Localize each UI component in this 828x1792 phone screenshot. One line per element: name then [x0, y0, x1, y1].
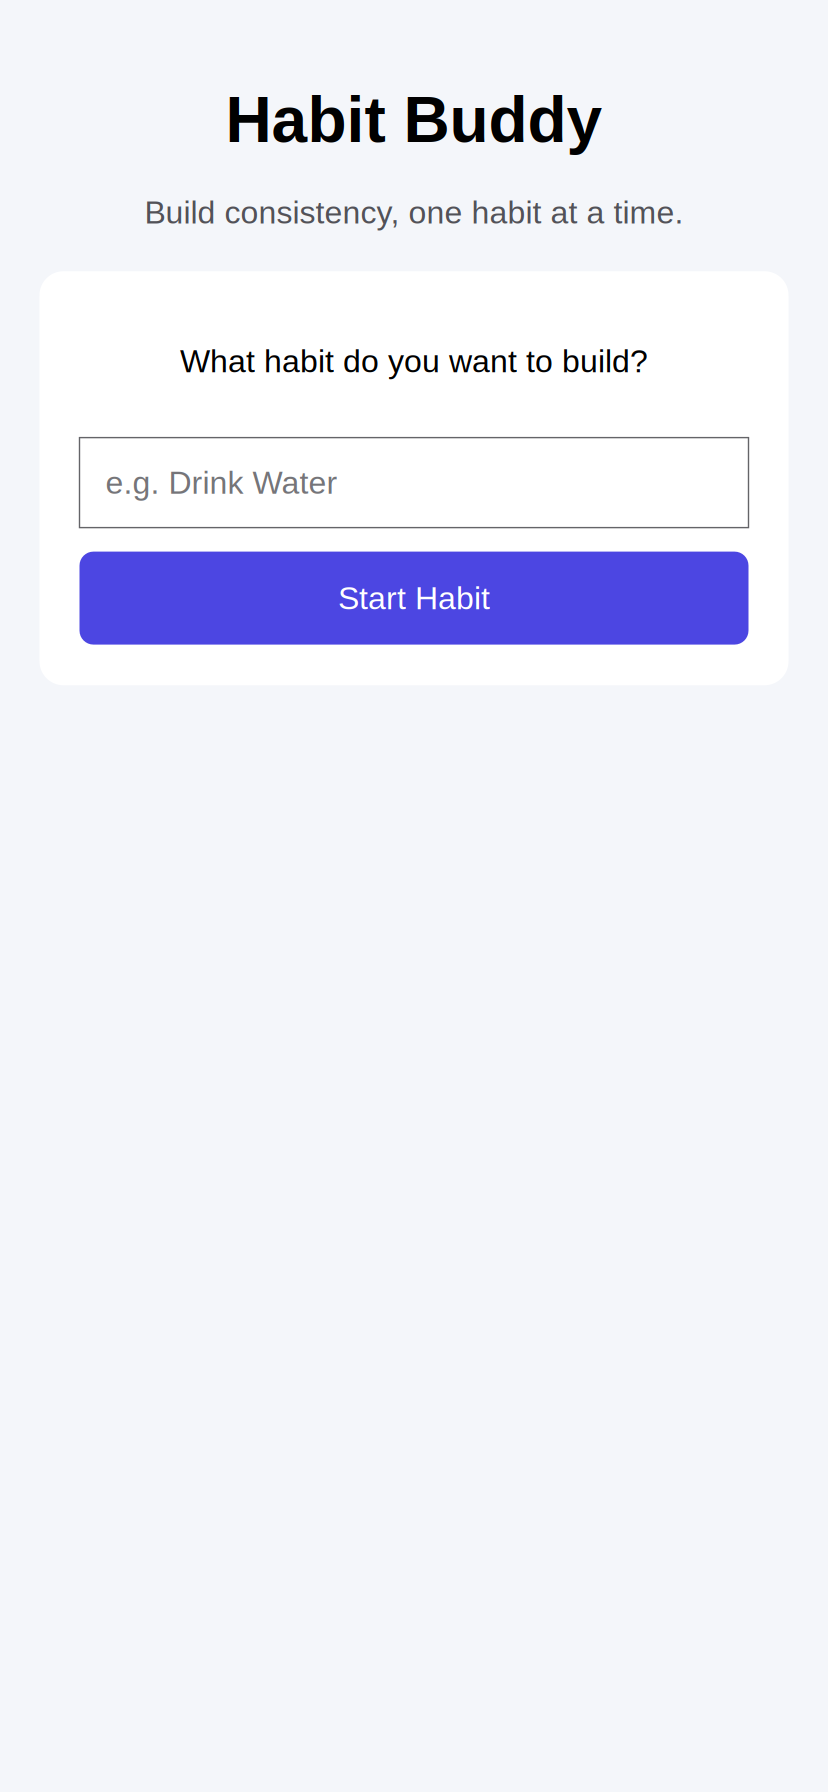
- staticText: e.g. Drink Water: [105, 465, 337, 500]
- staticText: Habit Buddy: [225, 84, 602, 155]
- staticText: Build consistency, one habit at a time.: [144, 194, 683, 230]
- staticText: Start Habit: [338, 580, 490, 616]
- button[interactable]: e.g. Drink Water: [79, 438, 748, 528]
- staticText: What habit do you want to build?: [180, 343, 648, 379]
- button[interactable]: Start Habit: [79, 552, 748, 645]
